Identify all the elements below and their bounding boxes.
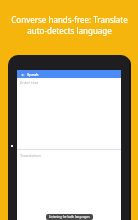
button[interactable]: Listening for both languages [49, 215, 90, 219]
staticText: Translation [20, 153, 41, 158]
button[interactable]: Back [17, 70, 121, 78]
staticText: Enter text [20, 80, 39, 85]
staticText: Speak [27, 72, 39, 77]
staticText: auto-detects language [27, 25, 112, 36]
staticText: Listening for both languages [49, 215, 90, 219]
button[interactable]: Translation [17, 150, 121, 220]
staticText: Converse hands-free: Translate [11, 14, 128, 25]
button[interactable]: Back [20, 72, 25, 77]
